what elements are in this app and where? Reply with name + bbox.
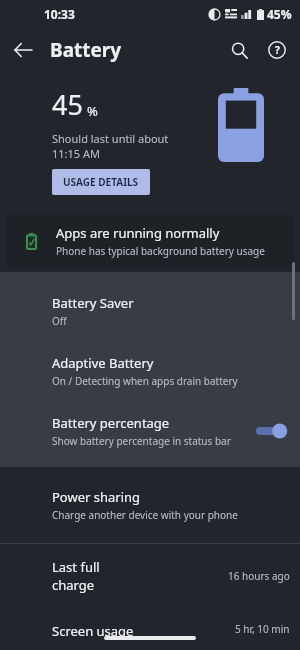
button[interactable]: Screen usage since full charge: [0, 608, 300, 650]
staticText: 45%: [267, 6, 292, 22]
staticText: 16 hours ago: [228, 569, 290, 583]
staticText: Last full charge: [52, 558, 140, 594]
staticText: Phone has typical background battery usa…: [56, 244, 265, 258]
button[interactable]: Power sharing: [0, 475, 300, 535]
button[interactable]: Battery percentage: [0, 401, 300, 461]
staticText: Battery Saver: [52, 294, 134, 312]
staticText: Charge another device with your phone: [52, 508, 238, 522]
staticText: %: [87, 102, 98, 120]
staticText: ?: [275, 43, 280, 57]
button[interactable]: Last full charge: [0, 544, 300, 608]
staticText: Power sharing: [52, 488, 141, 506]
button[interactable]: Back: [6, 33, 40, 67]
button[interactable]: Help: [260, 33, 294, 67]
staticText: Battery percentage: [52, 414, 170, 432]
button[interactable]: USAGE DETAILS: [52, 169, 150, 195]
button[interactable]: Apps are running normally: [6, 214, 294, 268]
staticText: 45: [52, 86, 83, 123]
button[interactable]: Battery Saver: [0, 281, 300, 341]
staticText: Off: [52, 314, 67, 328]
staticText: On / Detecting when apps drain battery: [52, 374, 238, 388]
staticText: USAGE DETAILS: [63, 175, 139, 189]
staticText: Screen usage since full charge: [52, 622, 143, 636]
button[interactable]: Search: [222, 33, 256, 67]
staticText: Adaptive Battery: [52, 354, 154, 372]
button[interactable]: Adaptive Battery: [0, 341, 300, 401]
staticText: 10:33: [44, 6, 75, 22]
staticText: Apps are running normally: [56, 224, 220, 242]
staticText: Battery: [50, 37, 122, 63]
staticText: Show battery percentage in status bar: [52, 434, 231, 448]
staticText: Should last until about 11:15 AM: [52, 131, 192, 161]
staticText: 5 hr, 10 min: [235, 622, 290, 636]
